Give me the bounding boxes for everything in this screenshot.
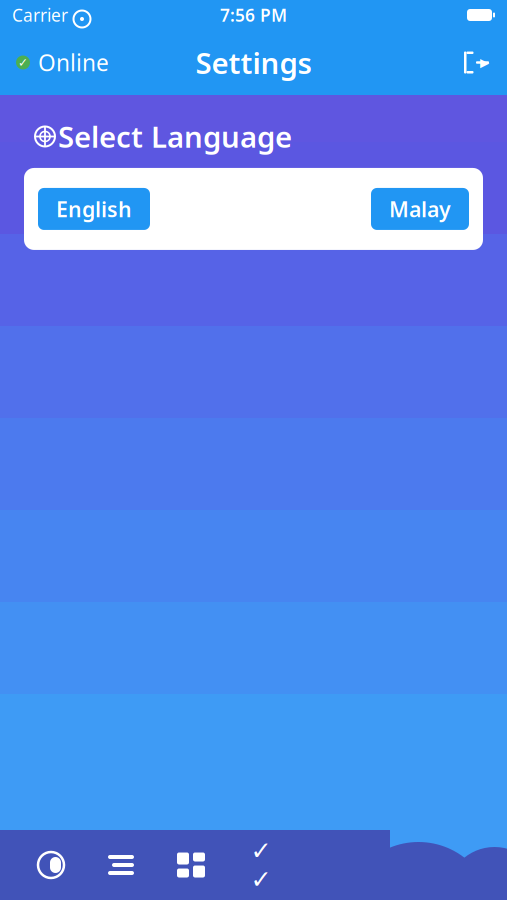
staticText: ✓✓ xyxy=(250,836,271,894)
staticText: Select Language xyxy=(58,117,292,156)
staticText: Carrier xyxy=(12,3,68,26)
staticText: ✓ xyxy=(18,56,28,69)
button[interactable]: Log out xyxy=(461,47,491,77)
staticText: Online xyxy=(38,47,109,77)
button[interactable]: ✓ xyxy=(16,47,109,77)
button[interactable]: Dashboard xyxy=(156,830,226,900)
button[interactable]: Completed xyxy=(226,830,296,900)
staticText: Settings xyxy=(195,43,311,82)
staticText: 7:56 PM xyxy=(220,3,287,26)
button[interactable]: English xyxy=(38,188,150,230)
staticText: Malay xyxy=(389,195,451,223)
button[interactable]: Malay xyxy=(371,188,469,230)
staticText: ▶ xyxy=(480,56,489,69)
button[interactable]: Menu xyxy=(86,830,156,900)
staticText: English xyxy=(56,195,132,223)
button[interactable]: Timer xyxy=(16,830,86,900)
